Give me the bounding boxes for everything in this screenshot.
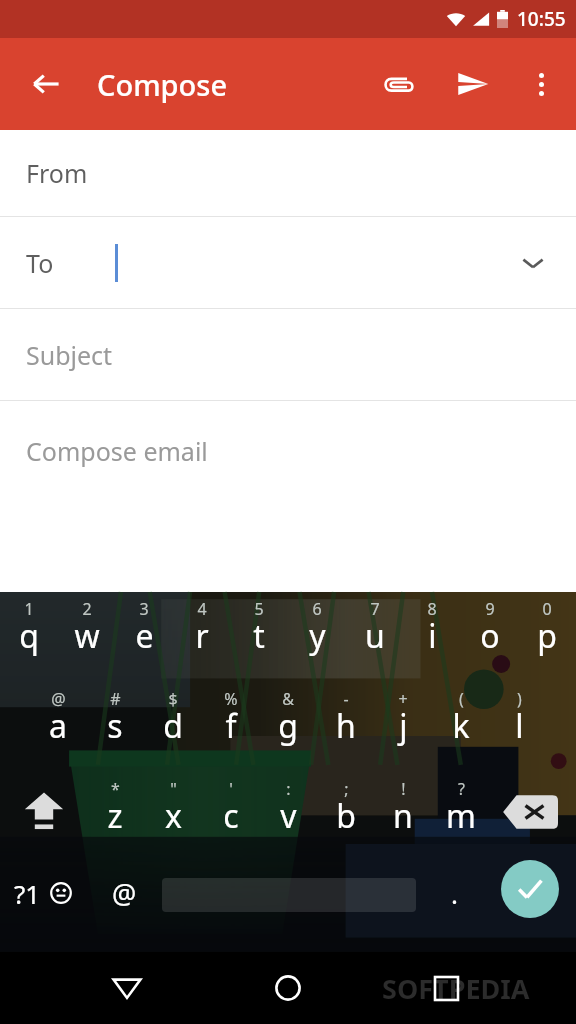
button[interactable]: ( xyxy=(432,686,490,748)
button[interactable]: Back xyxy=(20,58,72,110)
staticText: z xyxy=(107,794,123,838)
button[interactable]: Space xyxy=(162,878,416,912)
staticText: 1 xyxy=(24,598,34,620)
staticText: c xyxy=(223,794,239,838)
staticText: x xyxy=(165,794,182,838)
button[interactable]: From xyxy=(0,130,576,216)
button[interactable]: * xyxy=(86,776,144,838)
button[interactable]: 5 xyxy=(230,596,288,658)
button[interactable]: # xyxy=(86,686,144,748)
staticText: n xyxy=(393,794,413,838)
staticText: # xyxy=(110,688,121,710)
button[interactable]: Show Cc and Bcc xyxy=(510,240,556,286)
button[interactable]: @ xyxy=(94,860,154,926)
staticText: SOFTPEDIA xyxy=(382,970,530,1007)
button[interactable]: & xyxy=(259,686,317,748)
button[interactable]: Back xyxy=(96,957,158,1019)
staticText: 3 xyxy=(139,598,149,620)
staticText: + xyxy=(398,688,408,710)
button[interactable]: To xyxy=(0,217,576,308)
button[interactable]: Send xyxy=(447,58,499,110)
button[interactable]: ; xyxy=(317,776,375,838)
button[interactable]: . xyxy=(426,860,482,926)
staticText: b xyxy=(336,794,356,838)
button[interactable]: 7 xyxy=(346,596,404,658)
staticText: " xyxy=(170,778,177,800)
button[interactable]: : xyxy=(259,776,317,838)
button[interactable]: Recent apps xyxy=(415,957,477,1019)
staticText: v xyxy=(280,794,297,838)
button[interactable]: 0 xyxy=(518,596,576,658)
staticText: m xyxy=(446,794,476,838)
staticText: l xyxy=(515,704,524,748)
staticText: ) xyxy=(517,688,522,710)
button[interactable]: Shift xyxy=(4,776,84,846)
button[interactable]: ' xyxy=(202,776,260,838)
button[interactable]: 1 xyxy=(0,596,58,658)
button[interactable]: 9 xyxy=(461,596,519,658)
button[interactable]: @ xyxy=(29,686,87,748)
button[interactable]: Backspace xyxy=(492,782,568,842)
button[interactable]: Subject xyxy=(0,309,576,400)
button[interactable]: 8 xyxy=(403,596,461,658)
button[interactable]: Done xyxy=(501,860,559,918)
button[interactable]: " xyxy=(144,776,202,838)
button[interactable]: ! xyxy=(374,776,432,838)
staticText: @ xyxy=(112,875,137,912)
staticText: 0 xyxy=(542,598,552,620)
button[interactable]: 3 xyxy=(115,596,173,658)
staticText: 5 xyxy=(254,598,264,620)
staticText: y xyxy=(309,614,326,658)
staticText: p xyxy=(537,614,557,658)
staticText: ?1 xyxy=(14,876,41,911)
staticText: ? xyxy=(458,778,465,800)
button[interactable]: 4 xyxy=(173,596,231,658)
button[interactable]: More options xyxy=(518,61,564,107)
button[interactable]: % xyxy=(202,686,260,748)
staticText: From xyxy=(26,156,88,190)
staticText: Subject xyxy=(26,338,113,372)
staticText: q xyxy=(19,614,39,658)
button[interactable]: ? xyxy=(432,776,490,838)
staticText: 9 xyxy=(485,598,495,620)
staticText: h xyxy=(336,704,356,748)
button[interactable]: ) xyxy=(490,686,548,748)
staticText: a xyxy=(49,704,67,748)
button[interactable]: Home xyxy=(257,957,319,1019)
staticText: ; xyxy=(344,778,349,800)
button[interactable]: Attach file xyxy=(372,58,424,110)
staticText: e xyxy=(135,614,154,658)
staticText: 7 xyxy=(370,598,380,620)
staticText: ( xyxy=(459,688,464,710)
staticText: 10:55 xyxy=(517,6,566,32)
button[interactable]: - xyxy=(317,686,375,748)
staticText: Compose email xyxy=(26,434,208,468)
staticText: u xyxy=(365,614,385,658)
button[interactable]: 6 xyxy=(288,596,346,658)
button[interactable]: $ xyxy=(144,686,202,748)
staticText: * xyxy=(111,778,120,800)
staticText: t xyxy=(253,614,265,658)
staticText: & xyxy=(282,688,294,710)
staticText: f xyxy=(225,704,237,748)
staticText: k xyxy=(452,704,470,748)
staticText: j xyxy=(399,704,408,748)
staticText: - xyxy=(343,688,349,710)
staticText: @ xyxy=(51,688,66,710)
staticText: 2 xyxy=(82,598,92,620)
staticText: Compose xyxy=(97,65,228,104)
staticText: % xyxy=(224,688,238,710)
staticText: s xyxy=(107,704,123,748)
staticText: 8 xyxy=(427,598,437,620)
staticText: 4 xyxy=(197,598,207,620)
button[interactable]: Compose email xyxy=(0,401,576,591)
button[interactable]: ?1 xyxy=(2,860,88,926)
staticText: d xyxy=(163,704,183,748)
staticText: w xyxy=(74,614,100,658)
button[interactable]: + xyxy=(374,686,432,748)
staticText: 6 xyxy=(312,598,322,620)
staticText: ! xyxy=(401,778,406,800)
staticText: i xyxy=(428,614,437,658)
button[interactable]: 2 xyxy=(58,596,116,658)
staticText: g xyxy=(278,704,298,748)
